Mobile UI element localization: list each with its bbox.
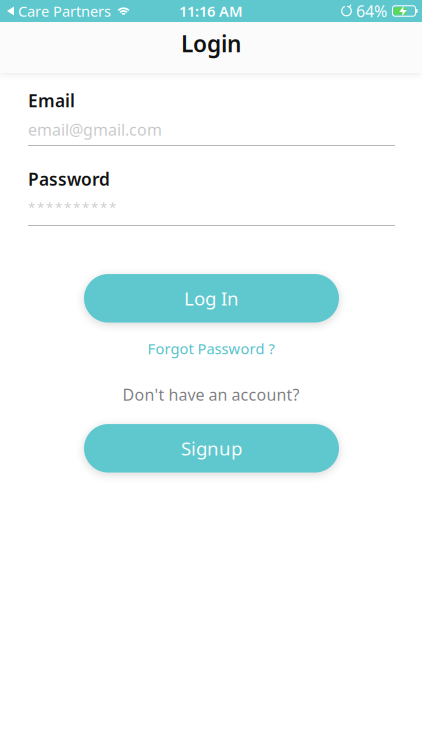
staticText: Login (181, 28, 241, 58)
staticText: email@gmail.com (28, 119, 162, 140)
staticText: Log In (184, 286, 239, 311)
staticText: ********** (28, 198, 116, 216)
staticText: Forgot Password ? (147, 339, 274, 358)
staticText: Care Partners (18, 1, 111, 21)
button[interactable]: Signup (84, 424, 339, 473)
staticText: Signup (181, 436, 242, 461)
staticText: 11:16 AM (179, 1, 243, 21)
staticText: Password (28, 167, 110, 190)
button[interactable]: Forgot Password ? (147, 339, 274, 358)
staticText: 64% (356, 0, 387, 22)
staticText: Email (28, 89, 75, 112)
button[interactable]: Log In (84, 274, 339, 323)
staticText: Don't have an account? (122, 384, 299, 405)
